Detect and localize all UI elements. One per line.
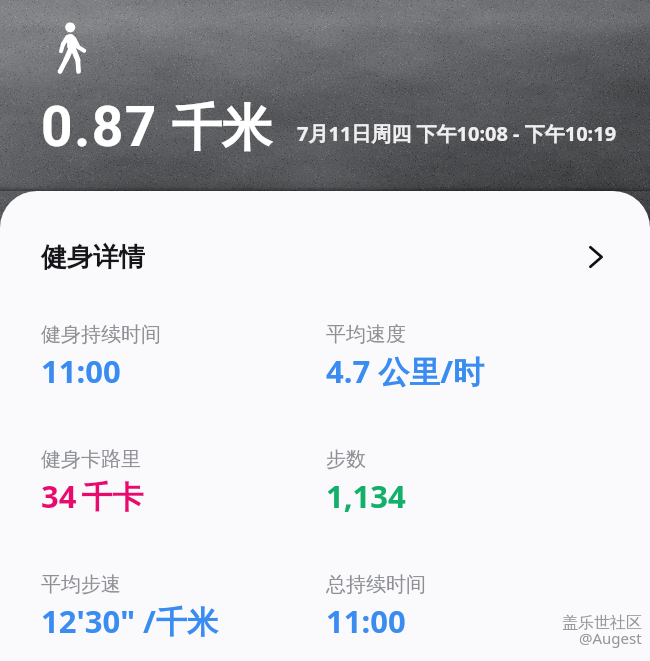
staticText: 11:00 [41,350,121,392]
staticText: 11:00 [326,600,406,642]
staticText: 健身持续时间 [41,322,161,347]
staticText: 4.7 公里/时 [326,350,485,392]
staticText: 平均步速 [41,572,121,597]
staticText: 12'30" /千米 [41,600,218,642]
staticText: 步数 [326,447,366,472]
staticText: 7月11日周四 下午10:08 - 下午10:19 [297,120,617,147]
other: 步行 [57,22,86,75]
button[interactable]: 健身详情 [0,191,650,313]
staticText: 总持续时间 [326,572,426,597]
staticText: 平均速度 [326,322,406,347]
staticText: @Augest [579,628,642,648]
staticText: 健身详情 [41,241,145,274]
other: 健身详情 [587,244,605,270]
staticText: 1,134 [326,475,406,517]
staticText: 0.87 [41,95,159,159]
staticText: 千米 [159,92,272,160]
staticText: 34 千卡 [41,475,144,517]
staticText: 盖乐世社区 [562,613,642,633]
staticText: 健身卡路里 [41,447,141,472]
